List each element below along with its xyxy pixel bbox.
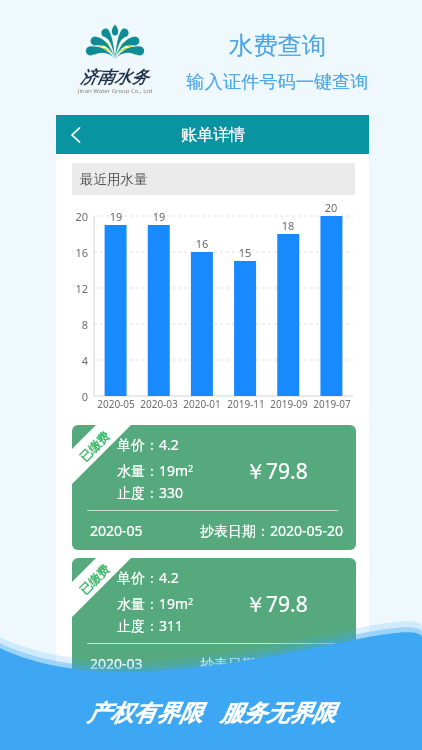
staticText: 20: [56, 209, 88, 224]
staticText: 2020-03: [135, 397, 183, 411]
staticText: 0: [56, 389, 88, 404]
staticText: 2019-09: [265, 397, 313, 411]
staticText: 2019-11: [222, 397, 270, 411]
staticText: 8: [56, 317, 88, 332]
staticText: 4: [56, 353, 88, 368]
staticText: 12: [56, 281, 88, 296]
staticText: 输入证件号码一键查询: [163, 70, 392, 93]
button[interactable]: Back: [56, 115, 96, 154]
staticText: ￥79.8: [245, 457, 308, 486]
staticText: 抄表日期：2020-03-20: [200, 654, 344, 673]
staticText: 止度：311: [117, 616, 184, 635]
staticText: 水量：19m2: [117, 461, 194, 480]
staticText: 抄表日期：2020-05-20: [200, 521, 344, 540]
staticText: 19: [96, 209, 136, 224]
staticText: 2020-01: [178, 397, 226, 411]
staticText: 产权有界限 服务无界限: [0, 696, 422, 727]
staticText: 19: [139, 209, 179, 224]
staticText: 18: [268, 218, 308, 233]
staticText: 济南水务: [74, 67, 154, 88]
staticText: 单价：4.2: [117, 435, 179, 454]
staticText: 止度：330: [117, 483, 184, 502]
staticText: 水量：19m2: [117, 594, 194, 613]
staticText: 水费查询: [163, 30, 392, 61]
button[interactable]: 已缴费: [72, 425, 356, 550]
staticText: 2020-05: [90, 521, 143, 540]
staticText: 15: [225, 245, 265, 260]
staticText: 2020-05: [92, 397, 140, 411]
staticText: ￥79.8: [245, 590, 308, 619]
staticText: 已缴费: [76, 561, 112, 597]
staticText: 20: [311, 200, 351, 215]
button[interactable]: 已缴费: [72, 558, 356, 683]
staticText: 2020-03: [90, 654, 143, 673]
staticText: 账单详情: [181, 125, 245, 145]
staticText: 2019-07: [308, 397, 356, 411]
staticText: Jinan Water Group Co., Ltd: [67, 87, 163, 95]
staticText: 16: [182, 236, 222, 251]
staticText: 最近用水量: [80, 171, 148, 188]
staticText: 16: [56, 245, 88, 260]
staticText: 已缴费: [76, 428, 112, 464]
staticText: 单价：4.2: [117, 568, 179, 587]
